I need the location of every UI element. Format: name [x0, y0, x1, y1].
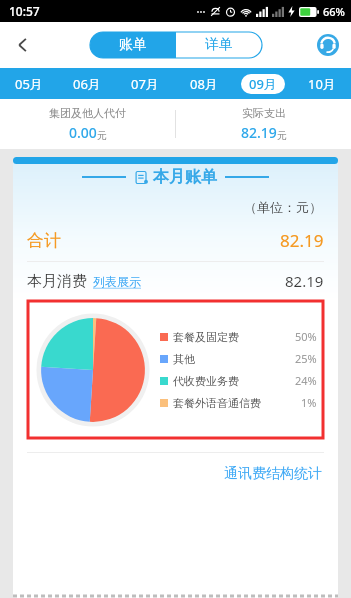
staticText: 账单: [119, 36, 147, 54]
staticText: 本月消费: [27, 272, 87, 291]
button[interactable]: Back: [0, 22, 46, 68]
button[interactable]: 详单: [176, 32, 262, 58]
staticText: 本月账单: [153, 167, 217, 187]
staticText: 25%: [295, 351, 317, 366]
staticText: 82.19: [241, 123, 277, 142]
button[interactable]: 07月: [116, 68, 174, 99]
staticText: 0.00: [69, 123, 97, 142]
staticText: 09月: [249, 75, 277, 93]
button[interactable]: 08月: [174, 68, 233, 99]
button[interactable]: 05月: [0, 68, 58, 99]
button[interactable]: 其他: [160, 351, 317, 366]
staticText: 元: [277, 129, 287, 142]
button[interactable]: 合计: [27, 229, 324, 252]
staticText: 07月: [131, 75, 159, 93]
staticText: 08月: [190, 75, 218, 93]
staticText: 82.19: [280, 229, 324, 252]
staticText: 10:57: [9, 3, 40, 19]
staticText: 1%: [301, 395, 317, 410]
staticText: 代收费业务费: [173, 374, 239, 388]
button[interactable]: 套餐外语音通信费: [160, 395, 317, 410]
button[interactable]: 账单: [90, 32, 176, 58]
staticText: 06月: [73, 75, 101, 93]
button[interactable]: 套餐及固定费: [160, 329, 317, 344]
button[interactable]: 代收费业务费: [160, 373, 317, 388]
button[interactable]: 09月: [233, 68, 292, 99]
button[interactable]: 集团及他人代付: [0, 106, 175, 142]
staticText: 其他: [173, 352, 195, 366]
staticText: 套餐外语音通信费: [173, 396, 261, 410]
staticText: 套餐及固定费: [173, 330, 239, 344]
staticText: 66%: [323, 4, 345, 19]
button[interactable]: 列表展示: [93, 274, 141, 289]
staticText: 10月: [308, 75, 336, 93]
staticText: 24%: [295, 373, 317, 388]
button[interactable]: Customer service: [305, 22, 351, 68]
button[interactable]: 实际支出: [176, 106, 351, 142]
staticText: 50%: [295, 329, 317, 344]
staticText: 05月: [15, 75, 43, 93]
button[interactable]: 10月: [292, 68, 351, 99]
staticText: 82.19: [285, 271, 324, 291]
staticText: 元: [97, 129, 107, 142]
button[interactable]: 06月: [58, 68, 116, 99]
staticText: 详单: [205, 36, 233, 54]
staticText: 合计: [27, 230, 61, 251]
staticText: 实际支出: [242, 106, 286, 120]
staticText: （单位：元）: [13, 199, 322, 215]
staticText: 集团及他人代付: [49, 106, 126, 120]
button[interactable]: 通讯费结构统计: [224, 465, 322, 483]
button[interactable]: 本月消费: [27, 271, 324, 291]
